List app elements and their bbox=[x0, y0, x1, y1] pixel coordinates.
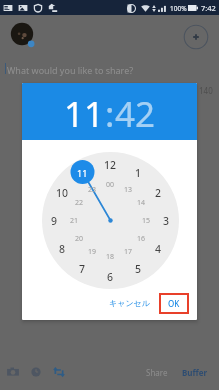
button[interactable]: Buffer bbox=[179, 365, 211, 380]
button[interactable]: キャンセル bbox=[104, 294, 155, 312]
staticText: 7:42 bbox=[201, 3, 216, 13]
staticText: 1 bbox=[135, 166, 142, 180]
staticText: 22 bbox=[75, 198, 84, 208]
staticText: OK bbox=[168, 298, 180, 309]
staticText: 19 bbox=[88, 247, 97, 257]
staticText: 3 bbox=[163, 214, 170, 228]
staticText: 21 bbox=[70, 216, 79, 226]
button[interactable]: Add profile bbox=[183, 24, 209, 50]
staticText: 7 bbox=[79, 262, 86, 276]
staticText: 9 bbox=[51, 214, 58, 228]
button[interactable]: Share bbox=[143, 365, 171, 380]
button[interactable]: Retweet bbox=[52, 365, 66, 379]
staticText: 4 bbox=[155, 242, 162, 256]
staticText: 12 bbox=[104, 158, 117, 172]
staticText: Share bbox=[146, 367, 168, 378]
staticText: 14 bbox=[137, 198, 146, 208]
staticText: 5 bbox=[135, 262, 142, 276]
button[interactable]: 42 bbox=[115, 90, 156, 138]
staticText: 20 bbox=[75, 234, 84, 244]
staticText: What would you like to share? bbox=[7, 64, 134, 76]
button[interactable]: Photo bbox=[6, 365, 20, 379]
staticText: 11 bbox=[77, 167, 88, 179]
button[interactable]: OK bbox=[159, 293, 189, 314]
staticText: 16 bbox=[137, 234, 146, 244]
staticText: 10 bbox=[56, 186, 69, 200]
staticText: 2 bbox=[155, 186, 162, 200]
staticText: 18 bbox=[106, 252, 115, 262]
staticText: 15 bbox=[142, 216, 151, 226]
staticText: 8 bbox=[59, 242, 66, 256]
staticText: Buffer bbox=[182, 367, 208, 378]
button[interactable]: Profile bbox=[10, 23, 34, 47]
staticText: : bbox=[105, 90, 115, 138]
staticText: 00 bbox=[106, 180, 115, 190]
button[interactable]: 11 bbox=[64, 90, 105, 138]
staticText: 140 bbox=[199, 85, 213, 96]
staticText: 42 bbox=[115, 90, 156, 138]
button[interactable]: Schedule bbox=[29, 365, 43, 379]
staticText: キャンセル bbox=[109, 298, 150, 308]
staticText: 23 bbox=[88, 185, 97, 195]
staticText: 6 bbox=[107, 270, 114, 284]
staticText: 13 bbox=[124, 185, 133, 195]
staticText: 11 bbox=[64, 90, 105, 138]
staticText: 100% bbox=[170, 4, 187, 13]
staticText: 17 bbox=[124, 247, 133, 257]
